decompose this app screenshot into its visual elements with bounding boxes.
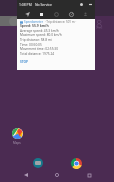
button[interactable]: Maps (5, 128, 29, 145)
button[interactable]: Profile (80, 9, 90, 19)
staticText: Average speed: 45.3 km/h (20, 29, 59, 33)
button[interactable]: STOP (18, 59, 31, 65)
button[interactable]: Record (51, 9, 61, 19)
button[interactable]: Recent apps (83, 169, 95, 181)
button[interactable]: Stop (36, 9, 46, 19)
button[interactable]: Chrome (71, 158, 82, 169)
staticText: Trip distance: 58.8 mi (20, 38, 52, 42)
staticText: 8 (96, 16, 103, 31)
button[interactable]: Back (20, 169, 32, 181)
staticText: STOP (20, 60, 29, 64)
staticText: Movement time: 02:55:30 (20, 47, 58, 51)
staticText: 1:08 PM (19, 2, 32, 7)
staticText: · Trip distance: 501 m · (44, 20, 77, 24)
staticText: Total distance: 1975.24 (20, 52, 55, 56)
staticText: Speed: 55.9 km/h (20, 23, 49, 28)
button[interactable]: Navigate (22, 9, 32, 19)
staticText: No Service (35, 2, 52, 7)
button[interactable]: Calculator (33, 158, 43, 168)
staticText: Wed (96, 26, 103, 30)
button[interactable]: Speedometer (66, 9, 76, 19)
staticText: Maximum speed: 80.0 km/h (20, 33, 62, 37)
button[interactable]: Speedometer (17, 19, 95, 70)
staticText: Speedometer (24, 20, 44, 24)
button[interactable]: Home (51, 169, 63, 181)
staticText: Time: 00:50:05 (20, 43, 42, 47)
staticText: Maps (13, 141, 21, 145)
